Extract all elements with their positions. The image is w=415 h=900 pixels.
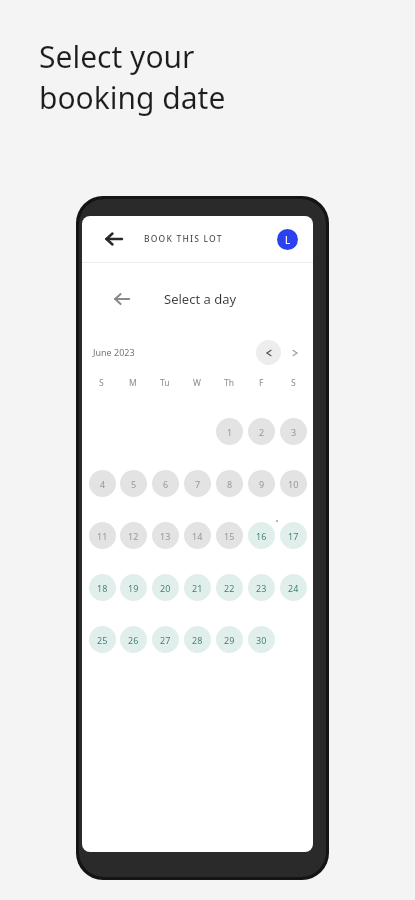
button[interactable]: 28 (184, 626, 211, 653)
button[interactable]: 19 (120, 574, 147, 601)
staticText: 23 (256, 582, 267, 594)
button[interactable]: 27 (152, 626, 179, 653)
staticText: 17 (288, 530, 299, 542)
button[interactable]: 15 (216, 522, 243, 549)
staticText: BOOK THIS LOT (144, 233, 223, 245)
staticText: 2 (259, 426, 265, 438)
button[interactable]: 14 (184, 522, 211, 549)
staticText: 25 (97, 634, 108, 646)
button[interactable]: 29 (216, 626, 243, 653)
staticText: S (99, 377, 104, 389)
button[interactable]: 30 (248, 626, 275, 653)
button[interactable]: Back (112, 289, 132, 309)
button[interactable]: 26 (120, 626, 147, 653)
staticText: Select your (39, 36, 195, 77)
button[interactable]: 12 (120, 522, 147, 549)
button[interactable]: Next month (284, 342, 306, 364)
staticText: 10 (288, 478, 299, 490)
staticText: W (193, 377, 201, 389)
button[interactable]: 17 (280, 522, 307, 549)
staticText: 4 (100, 478, 106, 490)
staticText: 14 (192, 530, 203, 542)
button[interactable]: 1 (216, 418, 243, 445)
staticText: 9 (259, 478, 265, 490)
staticText: 27 (160, 634, 171, 646)
button[interactable]: Previous month (256, 340, 281, 365)
button[interactable]: 20 (152, 574, 179, 601)
staticText: M (129, 377, 137, 389)
staticText: 6 (163, 478, 169, 490)
staticText: Th (224, 377, 234, 389)
button[interactable]: 6 (152, 470, 179, 497)
staticText: S (291, 377, 296, 389)
staticText: Tu (160, 377, 170, 389)
button[interactable]: 11 (89, 522, 116, 549)
staticText: F (259, 377, 264, 389)
staticText: 24 (288, 582, 299, 594)
button[interactable]: Profile (277, 229, 298, 250)
button[interactable]: 22 (216, 574, 243, 601)
staticText: 29 (224, 634, 235, 646)
button[interactable]: 21 (184, 574, 211, 601)
button[interactable]: 24 (280, 574, 307, 601)
staticText: L (285, 233, 291, 247)
staticText: 21 (192, 582, 203, 594)
button[interactable]: Back (103, 228, 125, 250)
button[interactable]: 9 (248, 470, 275, 497)
button[interactable]: 2 (248, 418, 275, 445)
staticText: June 2023 (93, 346, 135, 358)
button[interactable]: 18 (89, 574, 116, 601)
staticText: 7 (195, 478, 201, 490)
button[interactable]: 5 (120, 470, 147, 497)
staticText: 30 (256, 634, 267, 646)
staticText: booking date (39, 77, 226, 118)
staticText: 15 (224, 530, 235, 542)
staticText: 8 (227, 478, 233, 490)
staticText: 13 (160, 530, 171, 542)
staticText: 28 (192, 634, 203, 646)
staticText: 16 (256, 530, 267, 542)
staticText: 11 (97, 530, 108, 542)
staticText: 3 (291, 426, 297, 438)
button[interactable]: 10 (280, 470, 307, 497)
staticText: 5 (131, 478, 137, 490)
button[interactable]: 25 (89, 626, 116, 653)
staticText: 19 (128, 582, 139, 594)
button[interactable]: 13 (152, 522, 179, 549)
staticText: Select a day (164, 290, 237, 308)
button[interactable]: 4 (89, 470, 116, 497)
staticText: 26 (128, 634, 139, 646)
staticText: 20 (160, 582, 171, 594)
button[interactable]: 23 (248, 574, 275, 601)
button[interactable]: 8 (216, 470, 243, 497)
button[interactable]: 3 (280, 418, 307, 445)
staticText: 18 (97, 582, 108, 594)
staticText: 1 (227, 426, 233, 438)
button[interactable]: 16 (248, 522, 275, 549)
button[interactable]: 7 (184, 470, 211, 497)
staticText: 22 (224, 582, 235, 594)
staticText: 12 (128, 530, 139, 542)
